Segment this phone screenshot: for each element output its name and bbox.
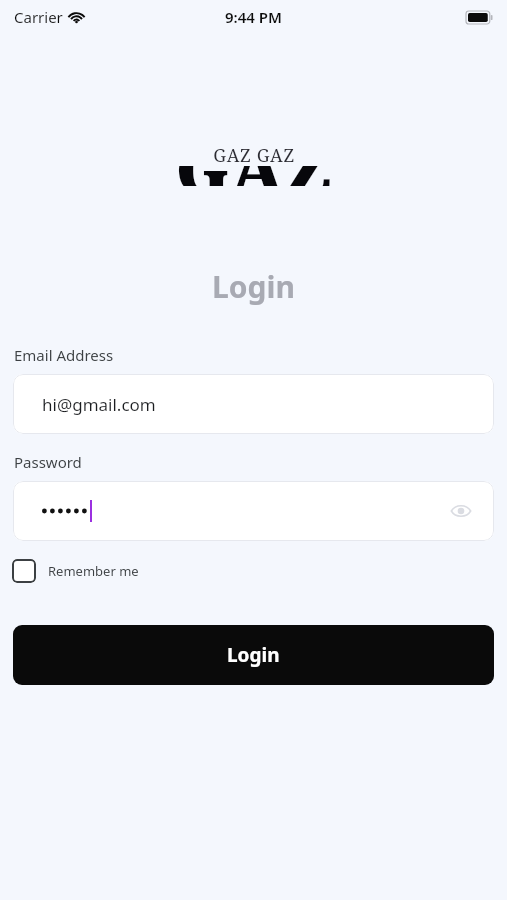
staticText: Login <box>227 642 280 668</box>
staticText: Login <box>0 266 507 307</box>
staticText: Carrier <box>14 7 63 27</box>
staticText: 9:44 PM <box>225 7 282 27</box>
staticText: GAZ GAZ <box>213 143 295 168</box>
staticText: hi@gmail.com <box>42 393 156 416</box>
button[interactable]: Show password <box>446 496 476 526</box>
staticText: Password <box>14 452 82 472</box>
staticText: Remember me <box>48 562 139 580</box>
button[interactable]: Show password <box>13 481 494 541</box>
button[interactable]: Remember me <box>12 559 139 583</box>
staticText: GAZ <box>175 122 333 186</box>
button[interactable]: Login <box>13 625 494 685</box>
button[interactable]: hi@gmail.com <box>13 374 494 434</box>
staticText: Email Address <box>14 345 114 365</box>
